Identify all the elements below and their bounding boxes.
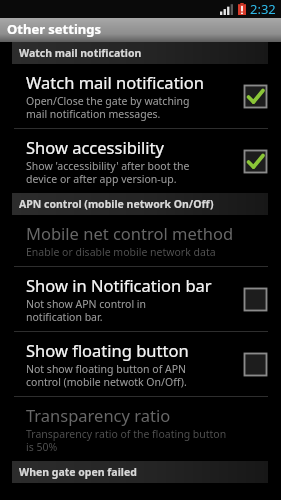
button[interactable]: Checked xyxy=(241,147,269,175)
button[interactable]: Unchecked xyxy=(241,285,269,313)
button[interactable]: Unchecked xyxy=(241,350,269,378)
button[interactable]: Transparency ratio xyxy=(0,397,281,461)
staticText: Not show APN control in notification bar… xyxy=(26,297,147,324)
staticText: 2:32 xyxy=(250,0,276,18)
staticText: Watch mail notification xyxy=(26,71,205,93)
staticText: Not show floating button of APN control … xyxy=(26,362,187,389)
staticText: Other settings xyxy=(7,20,101,38)
staticText: Show 'accessibility' after boot the devi… xyxy=(26,159,190,186)
staticText: Watch mail notification xyxy=(19,46,142,60)
staticText: Enable or disable mobile network data xyxy=(26,245,216,259)
button[interactable]: Mobile net control method xyxy=(0,215,281,266)
button[interactable]: Checked xyxy=(241,82,269,110)
staticText: Show accessibility xyxy=(26,136,164,158)
button[interactable]: Show in Notification bar xyxy=(0,267,281,331)
staticText: Show in Notification bar xyxy=(26,274,212,296)
button[interactable]: Show floating button xyxy=(0,332,281,396)
staticText: Open/Close the gate by watching mail not… xyxy=(26,94,190,121)
button[interactable]: Watch mail notification xyxy=(0,64,281,128)
staticText: Show floating button xyxy=(26,339,189,361)
staticText: APN control (mobile network On/Off) xyxy=(19,197,214,211)
staticText: Mobile net control method xyxy=(26,222,234,244)
button[interactable]: Show accessibility xyxy=(0,129,281,193)
staticText: Transparency ratio xyxy=(26,404,171,426)
staticText: When gate open failed xyxy=(19,465,137,479)
staticText: Transparency ratio of the floating butto… xyxy=(26,427,227,454)
